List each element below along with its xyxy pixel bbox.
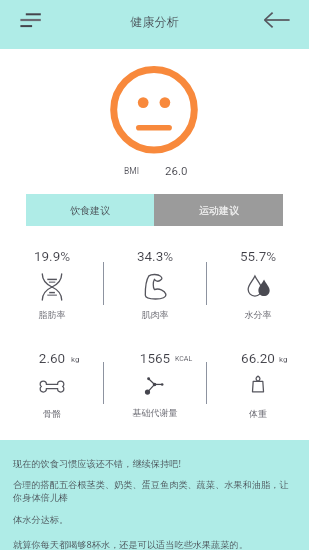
staticText: 运动建议 bbox=[199, 204, 239, 217]
staticText: 19.9% bbox=[2, 248, 102, 264]
staticText: 现在的饮食习惯应该还不错，继续保持吧! bbox=[13, 457, 181, 470]
staticText: 合理的搭配五谷根茎类、奶类、蛋豆鱼肉类、蔬菜、水果和油脂，让 bbox=[13, 479, 289, 491]
staticText: 就算你每天都喝够8杯水，还是可以适当吃些水果蔬菜的。 bbox=[13, 538, 248, 550]
button[interactable]: 2.60 bbox=[2, 350, 102, 422]
staticText: 34.3% bbox=[105, 248, 205, 264]
staticText: 肌肉率 bbox=[105, 309, 205, 320]
staticText: 饮食建议 bbox=[70, 204, 110, 217]
button[interactable]: 1565 bbox=[105, 350, 205, 422]
button[interactable]: 55.7% bbox=[208, 248, 308, 320]
staticText: 健康分析 bbox=[0, 14, 309, 29]
staticText: 水分率 bbox=[208, 309, 308, 320]
button[interactable]: 19.9% bbox=[2, 248, 102, 320]
button[interactable]: 饮食建议 bbox=[26, 194, 154, 226]
staticText: BMI bbox=[124, 166, 140, 176]
button[interactable]: 66.20 bbox=[208, 350, 308, 422]
button[interactable]: 34.3% bbox=[105, 248, 205, 320]
staticText: kg bbox=[71, 355, 80, 364]
button[interactable]: Back bbox=[261, 4, 292, 35]
staticText: 基础代谢量 bbox=[105, 407, 205, 418]
staticText: 1565 bbox=[105, 350, 205, 366]
staticText: 体重 bbox=[208, 408, 308, 419]
staticText: kg bbox=[279, 355, 288, 364]
staticText: 2.60 bbox=[2, 350, 102, 366]
staticText: 体水分达标。 bbox=[13, 514, 69, 526]
staticText: 你身体倍儿棒 bbox=[13, 492, 69, 504]
button[interactable]: Menu bbox=[15, 3, 49, 37]
staticText: 骨骼 bbox=[2, 408, 102, 419]
staticText: KCAL bbox=[175, 355, 193, 363]
staticText: 26.0 bbox=[165, 164, 188, 177]
button[interactable]: 运动建议 bbox=[154, 194, 283, 226]
staticText: 66.20 bbox=[208, 350, 308, 366]
staticText: 55.7% bbox=[208, 248, 308, 264]
staticText: 脂肪率 bbox=[2, 309, 102, 320]
